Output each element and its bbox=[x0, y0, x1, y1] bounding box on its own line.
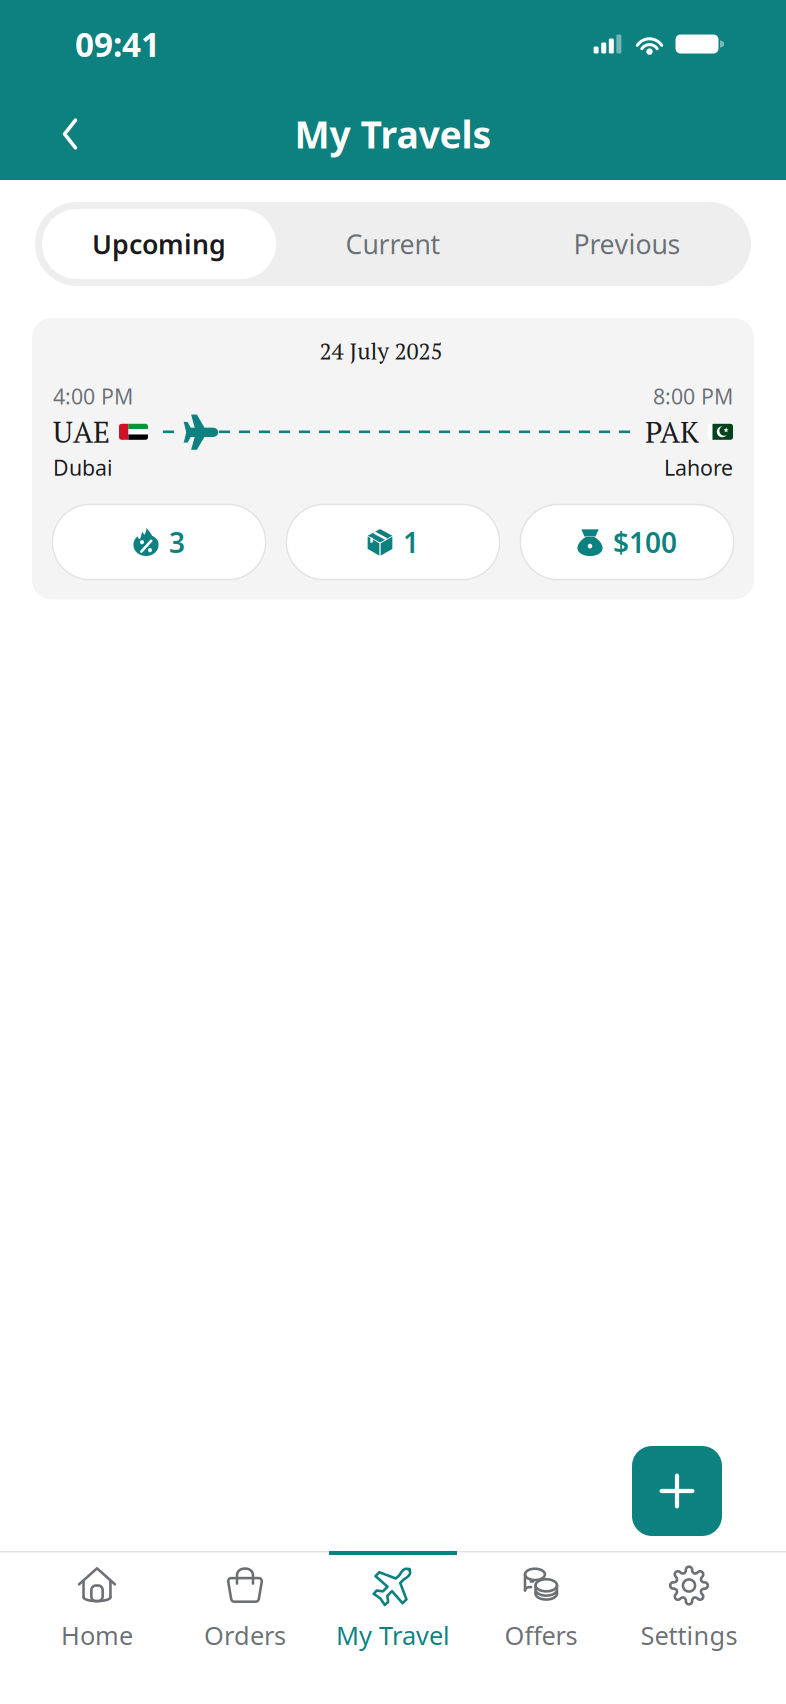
staticText: Orders bbox=[204, 1618, 286, 1652]
staticText: Upcoming bbox=[92, 226, 226, 262]
button[interactable]: Orders bbox=[171, 1555, 319, 1704]
staticText: Current bbox=[345, 226, 440, 262]
staticText: Dubai bbox=[53, 453, 113, 481]
button[interactable]: Offers bbox=[467, 1555, 615, 1704]
staticText: 8:00 PM bbox=[653, 382, 733, 410]
staticText: Home bbox=[61, 1618, 133, 1652]
staticText: Offers bbox=[504, 1618, 577, 1652]
staticText: My Travels bbox=[294, 109, 491, 159]
button[interactable]: Previous bbox=[510, 209, 744, 279]
staticText: Lahore bbox=[664, 453, 733, 481]
staticText: 1 bbox=[403, 523, 419, 561]
staticText: Previous bbox=[573, 226, 680, 262]
staticText: $100 bbox=[613, 523, 677, 561]
staticText: 4:00 PM bbox=[53, 382, 133, 410]
staticText: 09:41 bbox=[75, 22, 160, 66]
staticText: 3 bbox=[169, 523, 185, 561]
staticText: PAK bbox=[645, 412, 699, 451]
button[interactable]: Current bbox=[276, 209, 510, 279]
button[interactable]: Back bbox=[38, 102, 102, 166]
button[interactable]: Home bbox=[23, 1555, 171, 1704]
button[interactable]: 3 bbox=[51, 504, 266, 581]
staticText: 24 July 2025 bbox=[319, 336, 442, 366]
button[interactable]: $100 bbox=[519, 504, 734, 581]
button[interactable]: Settings bbox=[615, 1555, 763, 1704]
button[interactable]: Add travel bbox=[632, 1446, 722, 1536]
button[interactable]: 1 bbox=[285, 504, 500, 581]
staticText: My Travel bbox=[336, 1618, 450, 1652]
button[interactable]: My Travel bbox=[319, 1555, 467, 1704]
button[interactable]: Upcoming bbox=[42, 209, 276, 279]
staticText: UAE bbox=[53, 412, 110, 451]
staticText: Settings bbox=[640, 1618, 737, 1652]
